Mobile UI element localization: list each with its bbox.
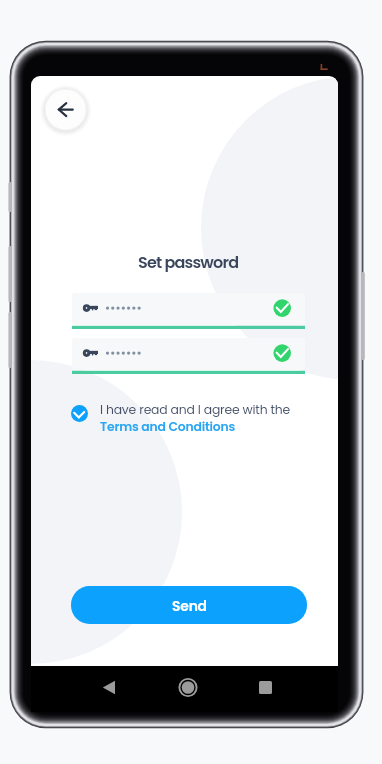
button[interactable]: Send <box>71 586 307 624</box>
button[interactable] <box>72 338 305 374</box>
staticText: I have read and I agree with the <box>100 401 291 418</box>
staticText: Send <box>172 596 207 615</box>
button[interactable]: Back <box>43 87 88 132</box>
button[interactable]: Terms and Conditions <box>100 418 235 435</box>
button[interactable] <box>72 293 305 329</box>
staticText: Set password <box>138 251 239 273</box>
button[interactable]: I have read and I agree with the <box>71 399 307 433</box>
